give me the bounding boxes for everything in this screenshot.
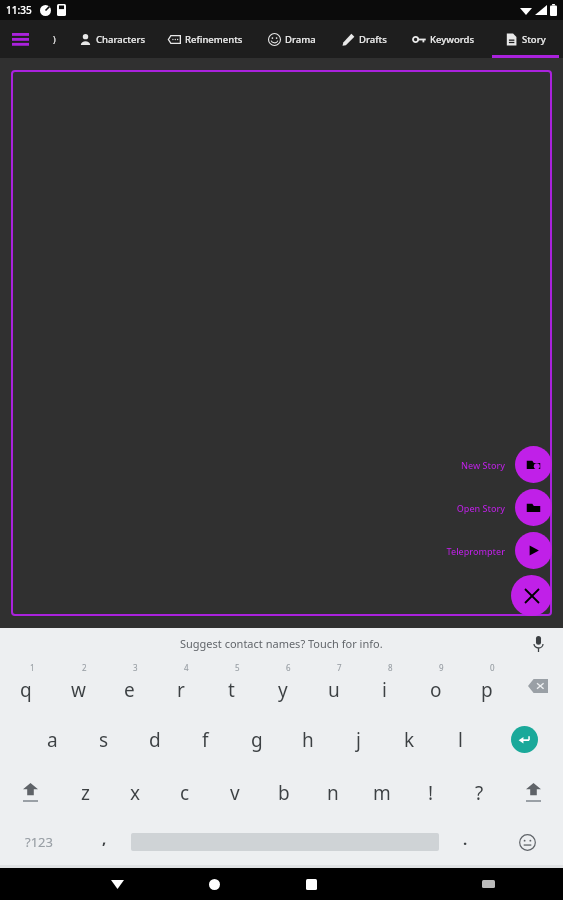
button[interactable]: Open Story <box>456 489 552 526</box>
staticText: ?123 <box>25 833 53 851</box>
button[interactable]: 8 <box>359 659 410 713</box>
staticText: 8 <box>388 662 393 673</box>
button[interactable]: j <box>333 713 384 766</box>
button[interactable]: Refinements <box>157 20 254 58</box>
staticText: i <box>382 677 387 703</box>
button[interactable]: Back <box>102 869 132 899</box>
button[interactable]: ?123 <box>0 819 78 865</box>
button[interactable]: Drama <box>254 20 329 58</box>
button[interactable]: Shift <box>504 766 563 819</box>
staticText: ! <box>428 780 434 806</box>
staticText: c <box>180 780 190 806</box>
button[interactable]: 2 <box>52 659 104 713</box>
button[interactable]: h <box>282 713 333 766</box>
staticText: q <box>20 677 32 703</box>
staticText: t <box>228 677 235 703</box>
staticText: w <box>71 677 86 703</box>
button[interactable]: v <box>210 766 259 819</box>
button[interactable]: b <box>259 766 308 819</box>
button[interactable]: 7 <box>308 659 359 713</box>
button[interactable]: Teleprompter <box>446 532 552 569</box>
button[interactable]: Shift <box>0 766 60 819</box>
staticText: . <box>463 829 468 849</box>
button[interactable]: New Story <box>460 446 552 483</box>
button[interactable]: f <box>180 713 231 766</box>
button[interactable]: Keywords <box>400 20 488 58</box>
button[interactable]: 5 <box>206 659 257 713</box>
button[interactable]: g <box>231 713 282 766</box>
button[interactable]: c <box>160 766 210 819</box>
staticText: f <box>202 727 209 753</box>
staticText: 1 <box>30 662 35 673</box>
button[interactable]: Close menu <box>511 575 552 616</box>
staticText: Suggest contact names? Touch for info. <box>180 636 383 651</box>
staticText: s <box>99 727 109 753</box>
staticText: Story <box>522 33 546 46</box>
staticText: ? <box>475 780 484 806</box>
button[interactable]: 1 <box>0 659 52 713</box>
button[interactable]: . <box>439 819 492 865</box>
staticText: 7 <box>337 662 342 673</box>
button[interactable]: , <box>78 819 131 865</box>
button[interactable]: Backspace <box>512 659 563 713</box>
staticText: Drama <box>285 33 316 46</box>
button[interactable]: 6 <box>257 659 308 713</box>
button[interactable]: d <box>129 713 180 766</box>
staticText: e <box>124 677 135 703</box>
staticText: b <box>278 780 290 806</box>
button[interactable]: 9 <box>410 659 461 713</box>
staticText: r <box>177 677 185 703</box>
staticText: p <box>481 677 493 703</box>
staticText: d <box>149 727 161 753</box>
button[interactable]: a <box>27 713 78 766</box>
staticText: a <box>47 727 58 753</box>
button[interactable]: s <box>78 713 129 766</box>
staticText: , <box>102 828 107 848</box>
staticText: Refinements <box>185 33 243 46</box>
staticText: u <box>328 677 340 703</box>
button[interactable]: Menu <box>0 20 40 58</box>
staticText: Open Story <box>456 502 505 514</box>
button[interactable]: z <box>60 766 110 819</box>
staticText: y <box>278 677 288 703</box>
button[interactable]: ! <box>406 766 455 819</box>
button[interactable]: Drafts <box>329 20 400 58</box>
staticText: l <box>458 727 463 753</box>
staticText: 0 <box>490 662 495 673</box>
staticText: z <box>81 780 90 806</box>
staticText: 2 <box>82 662 87 673</box>
staticText: Keywords <box>430 33 475 46</box>
button[interactable]: k <box>384 713 435 766</box>
staticText: 3 <box>133 662 138 673</box>
staticText: 4 <box>184 662 189 673</box>
button[interactable]: ) <box>40 20 68 58</box>
button[interactable]: Recents <box>296 869 326 899</box>
button[interactable]: Characters <box>68 20 157 58</box>
staticText: x <box>130 780 141 806</box>
staticText: o <box>430 677 442 703</box>
button[interactable]: Keyboard <box>473 869 503 899</box>
staticText: m <box>373 780 391 806</box>
staticText: 9 <box>439 662 444 673</box>
staticText: 5 <box>235 662 240 673</box>
button[interactable]: l <box>435 713 486 766</box>
button[interactable]: 0 <box>461 659 512 713</box>
button[interactable]: x <box>110 766 160 819</box>
button[interactable]: Story <box>488 20 563 58</box>
button[interactable]: 3 <box>104 659 155 713</box>
button[interactable]: n <box>308 766 357 819</box>
button[interactable]: ? <box>455 766 504 819</box>
button[interactable]: Voice input <box>527 633 549 655</box>
staticText: n <box>327 780 339 806</box>
staticText: v <box>230 780 240 806</box>
staticText: j <box>356 727 361 753</box>
button[interactable]: m <box>357 766 406 819</box>
button[interactable]: Home <box>199 869 229 899</box>
button[interactable]: Emoji <box>492 819 563 865</box>
button[interactable]: Enter <box>486 713 563 766</box>
button[interactable]: 4 <box>155 659 206 713</box>
staticText: Teleprompter <box>446 545 505 557</box>
staticText: Characters <box>96 33 146 46</box>
staticText: 11:35 <box>6 3 32 17</box>
